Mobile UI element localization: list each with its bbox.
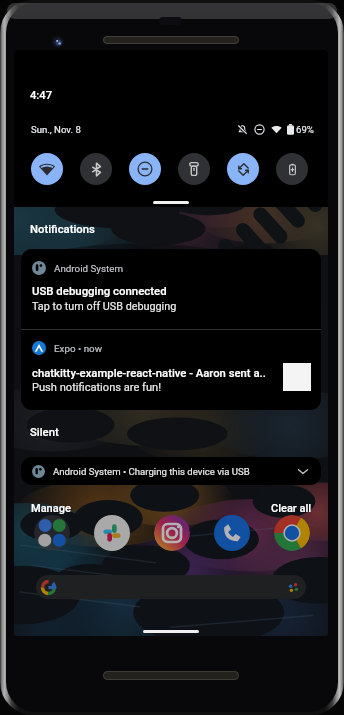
staticText: 69% <box>296 124 314 135</box>
button[interactable]: Slack <box>94 515 130 551</box>
button[interactable]: Search <box>36 575 306 599</box>
button[interactable]: Manage <box>31 502 71 515</box>
button[interactable]: Google folder <box>34 515 70 551</box>
staticText: Silent <box>30 426 59 439</box>
button[interactable]: Phone <box>214 515 250 551</box>
staticText: Notifications <box>30 223 95 236</box>
button[interactable]: Android System • Charging this device vi… <box>21 457 321 485</box>
staticText: Android System • Charging this device vi… <box>53 466 250 477</box>
staticText: Expo • now <box>54 343 103 354</box>
button[interactable]: Bluetooth <box>80 153 112 185</box>
button[interactable]: Chrome <box>274 515 310 551</box>
button[interactable]: Flashlight <box>178 153 210 185</box>
button[interactable]: Auto-rotate <box>227 153 259 185</box>
staticText: Android System <box>54 263 123 274</box>
button[interactable]: Android System <box>21 249 321 329</box>
button[interactable]: Clear all <box>271 502 312 515</box>
button[interactable]: Expand <box>295 463 311 479</box>
staticText: Tap to turn off USB debugging <box>32 300 177 313</box>
button[interactable]: Wi-Fi <box>31 153 63 185</box>
staticText: Sun., Nov. 8 <box>31 124 81 135</box>
staticText: Push notifications are fun! <box>32 381 162 394</box>
staticText: USB debugging connected <box>32 284 167 297</box>
button[interactable]: Battery saver <box>276 153 308 185</box>
button[interactable]: Expo • now <box>21 330 321 410</box>
staticText: chatkitty-example-react-native - Aaron s… <box>32 367 266 380</box>
button[interactable]: Do not disturb <box>129 153 161 185</box>
staticText: 4:47 <box>30 89 53 102</box>
button[interactable]: Instagram <box>154 515 190 551</box>
